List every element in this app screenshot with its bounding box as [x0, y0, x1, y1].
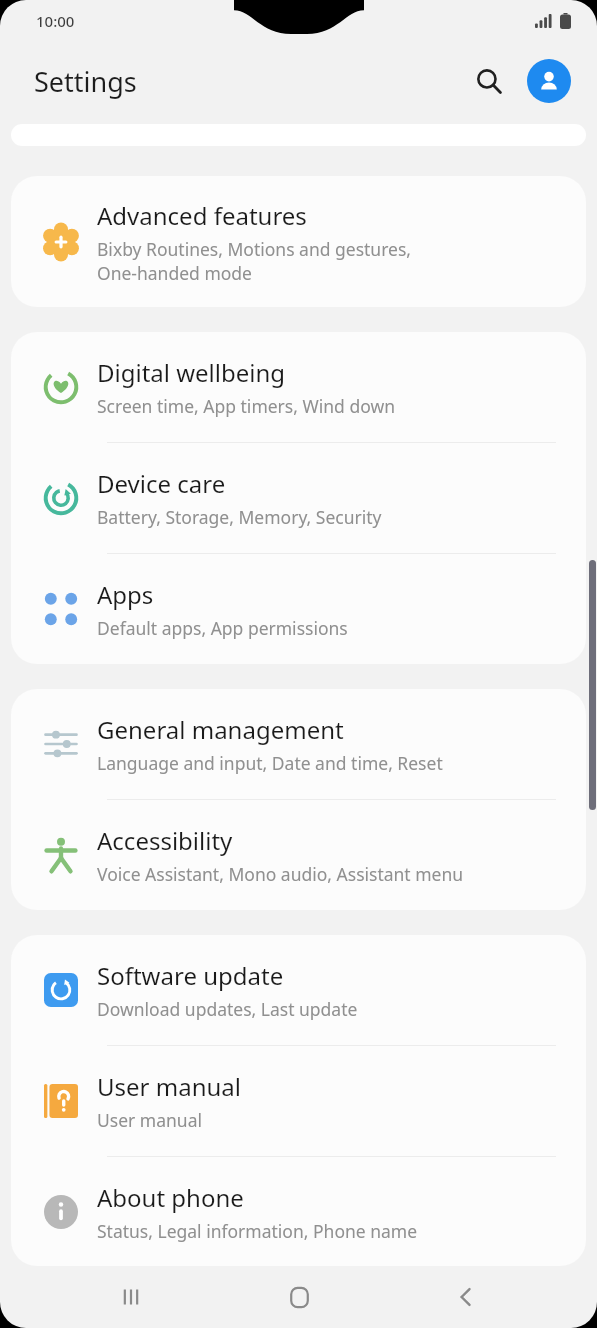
staticText: About phone	[97, 1181, 244, 1214]
staticText: Default apps, App permissions	[97, 616, 348, 640]
staticText: Digital wellbeing	[97, 356, 286, 389]
button[interactable]: About phone	[11, 1157, 586, 1266]
button[interactable]: Software update	[11, 935, 586, 1045]
staticText: Settings	[34, 63, 137, 100]
staticText: Language and input, Date and time, Reset	[97, 751, 443, 775]
staticText: Device care	[97, 467, 226, 500]
staticText: Screen time, App timers, Wind down	[97, 394, 395, 418]
button[interactable]: Advanced features	[11, 176, 586, 307]
staticText: Download updates, Last update	[97, 997, 358, 1021]
button[interactable]: Apps	[11, 554, 586, 664]
button[interactable]: Digital wellbeing	[11, 332, 586, 442]
button[interactable]: Accessibility	[11, 800, 586, 910]
button[interactable]: Back	[429, 1266, 503, 1328]
button[interactable]: General management	[11, 689, 586, 799]
staticText: User manual	[97, 1108, 202, 1132]
staticText: Voice Assistant, Mono audio, Assistant m…	[97, 862, 464, 886]
staticText: Status, Legal information, Phone name	[97, 1219, 418, 1243]
staticText: Battery, Storage, Memory, Security	[97, 505, 382, 529]
button[interactable]: User manual	[11, 1046, 586, 1156]
button[interactable]: Device care	[11, 443, 586, 553]
button[interactable]: Search	[465, 57, 513, 105]
staticText: 10:00	[36, 11, 75, 31]
staticText: Advanced features	[97, 199, 307, 232]
staticText: General management	[97, 713, 344, 746]
staticText: Apps	[97, 578, 154, 611]
button[interactable]: Account	[527, 59, 571, 103]
staticText: User manual	[97, 1070, 241, 1103]
staticText: Accessibility	[97, 824, 233, 857]
staticText: Bixby Routines, Motions and gestures, On…	[97, 237, 412, 285]
staticText: Software update	[97, 959, 284, 992]
button[interactable]: Home	[262, 1266, 336, 1328]
button[interactable]: Recents	[94, 1266, 168, 1328]
